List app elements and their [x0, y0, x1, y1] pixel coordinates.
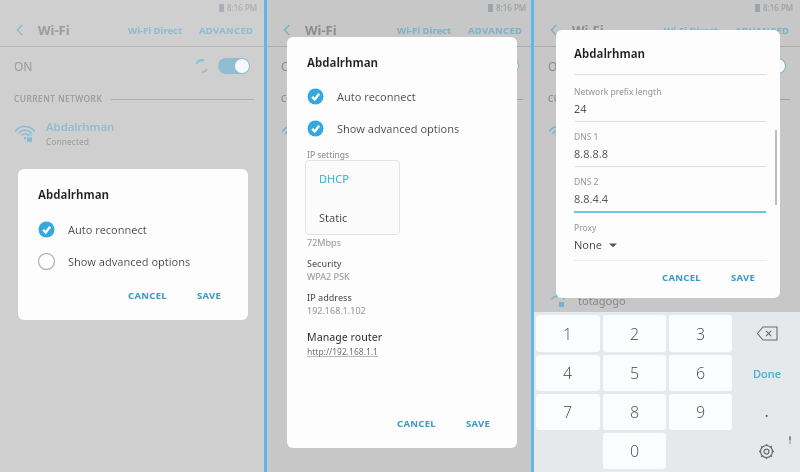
button[interactable]: DHCP — [319, 171, 400, 186]
staticText: ADVANCED — [735, 24, 790, 37]
staticText: 4 — [563, 362, 573, 384]
button[interactable]: 6 — [669, 355, 732, 391]
staticText: Abdalrhman — [580, 119, 649, 135]
button[interactable]: Back — [277, 20, 297, 40]
button[interactable]: Checked — [38, 221, 55, 238]
button[interactable]: Wi-Fi Direct — [128, 24, 183, 37]
staticText: ON — [281, 58, 300, 74]
button[interactable]: 8 — [603, 394, 666, 430]
staticText: Abdalrhman — [46, 119, 115, 135]
button[interactable]: Checked — [38, 221, 248, 238]
button[interactable]: Done — [735, 355, 798, 391]
staticText: CANCEL — [397, 417, 436, 430]
button[interactable]: Wi-Fi Direct — [397, 24, 452, 37]
button[interactable]: 0 — [603, 433, 666, 469]
button[interactable]: Keyboard settings — [735, 433, 798, 469]
staticText: Abdalrhman — [574, 46, 646, 62]
button[interactable]: 2 — [603, 315, 666, 352]
button[interactable]: 1 — [536, 315, 600, 352]
button[interactable]: ON — [281, 47, 519, 85]
staticText: Wi-Fi — [305, 21, 337, 39]
staticText: Auto reconnect — [337, 89, 416, 104]
button[interactable]: ADVANCED — [735, 24, 790, 37]
button[interactable]: Abdalrhman — [548, 113, 786, 153]
staticText: SAVE — [197, 289, 222, 302]
button[interactable]: Unchecked — [38, 253, 55, 270]
staticText: http://192.168.1.1 — [307, 346, 378, 358]
staticText: Wi-Fi Direct — [397, 24, 452, 37]
staticText: Abdalrhman — [38, 187, 110, 203]
button[interactable]: Back — [10, 20, 30, 40]
staticText: 0 — [630, 440, 640, 462]
staticText: IP address — [307, 291, 352, 303]
staticText: CANCEL — [662, 271, 701, 284]
button[interactable]: Checked — [307, 120, 517, 137]
button[interactable]: Wi-Fi Direct — [664, 24, 719, 37]
button[interactable]: ON — [14, 47, 250, 85]
button[interactable]: SAVE — [191, 285, 228, 306]
staticText: Proxy — [574, 222, 597, 234]
staticText: Auto reconnect — [68, 222, 147, 237]
button[interactable]: 4 — [536, 355, 600, 391]
button[interactable]: Unchecked — [38, 253, 248, 270]
staticText: Abdalrhman — [313, 119, 382, 135]
staticText: ADVANCED — [468, 24, 523, 37]
button[interactable]: Backspace — [735, 315, 798, 352]
staticText: DHCP — [319, 171, 349, 186]
button[interactable]: 9 — [669, 394, 732, 430]
button[interactable]: SAVE — [460, 413, 497, 434]
button[interactable]: Wi-Fi toggle — [218, 58, 250, 74]
button[interactable]: Wi-Fi toggle — [487, 58, 519, 74]
button[interactable]: 3 — [669, 315, 732, 352]
staticText: Manage router — [307, 330, 383, 344]
staticText: 7 — [563, 401, 573, 423]
staticText: Wi-Fi Direct — [664, 24, 719, 37]
staticText: 2 — [630, 323, 640, 345]
staticText: Security — [307, 257, 342, 269]
staticText: DNS 1 — [574, 131, 599, 143]
staticText: Connected — [580, 136, 623, 148]
staticText: CANCEL — [128, 289, 167, 302]
staticText: DNS 2 — [574, 176, 599, 188]
staticText: 8 — [630, 401, 640, 423]
button[interactable]: SAVE — [725, 267, 762, 288]
staticText: 8.8.8.8 — [574, 146, 609, 161]
button[interactable]: ADVANCED — [199, 24, 254, 37]
button[interactable]: CANCEL — [122, 285, 173, 306]
button[interactable]: Checked — [307, 88, 324, 105]
staticText: Static — [319, 210, 348, 225]
staticText: 8:16 PM — [496, 2, 527, 13]
button[interactable]: Checked — [307, 88, 517, 105]
staticText: Network prefix length — [574, 86, 662, 98]
button[interactable]: Abdalrhman — [14, 113, 250, 153]
staticText: CURRENT NETWORK — [548, 93, 637, 105]
button[interactable]: Period — [735, 394, 798, 430]
staticText: Connected — [46, 136, 89, 148]
button[interactable]: 7 — [536, 394, 600, 430]
staticText: 8:16 PM — [227, 2, 258, 13]
button[interactable]: Manage router — [307, 330, 383, 358]
button[interactable]: CANCEL — [391, 413, 442, 434]
button[interactable]: Static — [319, 210, 400, 225]
staticText: 5 — [630, 362, 640, 384]
staticText: WPA2 PSK — [307, 270, 350, 282]
button[interactable]: Abdalrhman — [281, 113, 519, 153]
staticText: Done — [753, 366, 781, 381]
staticText: 72Mbps — [307, 236, 341, 248]
button[interactable]: ADVANCED — [468, 24, 523, 37]
staticText: Abdalrhman — [307, 55, 379, 71]
staticText: totagogo — [578, 293, 626, 308]
staticText: . — [765, 404, 769, 420]
button[interactable]: 5 — [603, 355, 666, 391]
button[interactable]: Checked — [307, 120, 324, 137]
staticText: None — [574, 237, 603, 252]
staticText: CURRENT NETWORK — [281, 93, 370, 105]
button[interactable]: None — [574, 237, 617, 252]
button[interactable]: CANCEL — [656, 267, 707, 288]
button[interactable]: ON — [548, 47, 786, 85]
staticText: Network speed — [307, 223, 373, 235]
button[interactable]: Wi-Fi toggle — [754, 58, 786, 74]
button[interactable]: Back — [544, 20, 564, 40]
